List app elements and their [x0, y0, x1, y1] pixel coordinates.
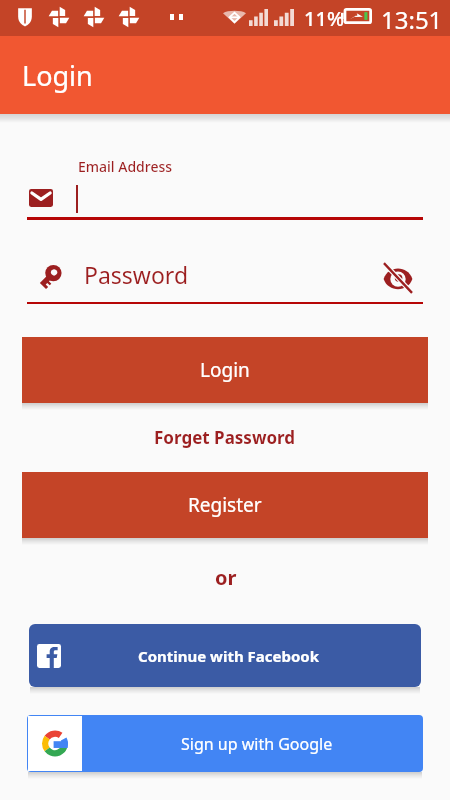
staticText: Continue with Facebook: [138, 646, 320, 666]
button[interactable]: Sign up with Google: [27, 715, 423, 772]
button[interactable]: Register: [22, 472, 428, 538]
staticText: Forget Password: [154, 426, 296, 449]
staticText: Login: [200, 357, 250, 383]
staticText: Email Address: [78, 157, 173, 176]
staticText: Password: [84, 259, 189, 290]
staticText: Sign up with Google: [181, 733, 333, 755]
staticText: 13:51: [381, 3, 443, 36]
button[interactable]: Forget Password: [140, 423, 310, 451]
staticText: or: [215, 564, 237, 590]
button[interactable]: Login: [22, 337, 428, 403]
staticText: Register: [188, 492, 262, 518]
button[interactable]: Continue with Facebook: [29, 624, 421, 687]
button[interactable]: Toggle password visibility: [378, 258, 418, 298]
staticText: Login: [22, 57, 93, 94]
staticText: 11%: [304, 5, 344, 32]
